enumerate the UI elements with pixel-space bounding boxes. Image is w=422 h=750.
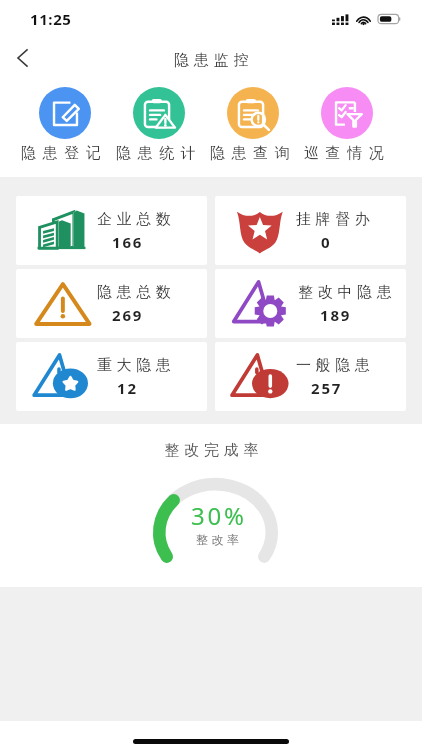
staticText: 11:25	[30, 9, 72, 29]
staticText: 30%	[191, 499, 247, 532]
button[interactable]: 整改中隐患	[215, 269, 406, 338]
button[interactable]: 隐患登记	[17, 77, 112, 163]
staticText: 一般隐患	[296, 356, 375, 375]
staticText: 整改完成率	[162, 441, 261, 460]
staticText: 257	[311, 378, 343, 398]
staticText: 整改中隐患	[296, 283, 394, 302]
staticText: 挂牌督办	[296, 210, 375, 229]
staticText: 隐患统计	[116, 144, 203, 163]
staticText: 隐患监控	[174, 51, 254, 70]
button[interactable]: Back	[0, 38, 44, 77]
staticText: 隐患查询	[210, 144, 297, 163]
staticText: 重大隐患	[97, 356, 176, 375]
staticText: 整改率	[196, 532, 243, 547]
button[interactable]: 巡查情况	[300, 77, 394, 163]
staticText: 12	[117, 378, 138, 398]
button[interactable]: 重大隐患	[16, 342, 207, 411]
button[interactable]: 挂牌督办	[215, 196, 406, 265]
staticText: 166	[112, 232, 144, 252]
staticText: 隐患登记	[21, 144, 108, 163]
button[interactable]: 一般隐患	[215, 342, 406, 411]
staticText: 269	[112, 305, 144, 325]
button[interactable]: 隐患统计	[112, 77, 206, 163]
button[interactable]: 企业总数	[16, 196, 207, 265]
staticText: 隐患总数	[97, 283, 176, 302]
staticText: 巡查情况	[304, 144, 391, 163]
button[interactable]: 隐患查询	[206, 77, 300, 163]
staticText: 189	[320, 305, 352, 325]
staticText: 0	[321, 232, 332, 252]
staticText: 企业总数	[97, 210, 176, 229]
button[interactable]: 隐患总数	[16, 269, 207, 338]
